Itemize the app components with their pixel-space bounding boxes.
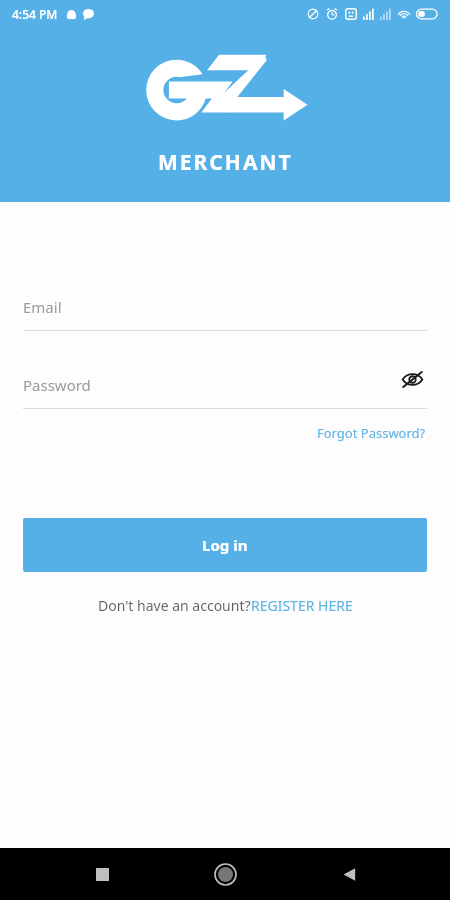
staticText: MERCHANT (158, 148, 293, 177)
staticText: 4:54 PM (12, 6, 58, 22)
staticText: REGISTER HERE (251, 596, 353, 615)
button[interactable]: Home (203, 852, 247, 896)
button[interactable]: Recent apps (80, 852, 124, 896)
other: EZ Merchant logo (140, 50, 310, 138)
button[interactable]: Back (327, 852, 371, 896)
button[interactable]: Log in (23, 518, 427, 572)
staticText: Forgot Password? (317, 424, 426, 442)
button[interactable]: Toggle password visibility (397, 365, 427, 393)
staticText: Don't have an account? (98, 596, 251, 615)
staticText: Email (23, 297, 62, 317)
staticText: Password (23, 375, 91, 395)
button[interactable]: REGISTER HERE (251, 596, 353, 615)
button[interactable]: Forgot Password? (315, 421, 428, 445)
staticText: Log in (202, 535, 248, 555)
